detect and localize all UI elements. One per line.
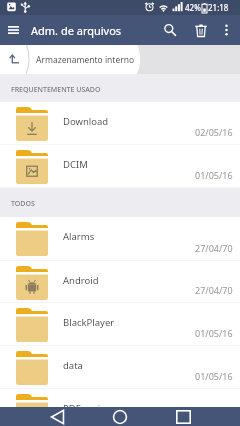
button[interactable]: data <box>0 346 240 389</box>
staticText: Android <box>63 274 99 287</box>
staticText: 01/05/16 <box>195 370 233 382</box>
button[interactable]: Home <box>90 407 150 426</box>
button[interactable]: Back <box>27 407 87 426</box>
button[interactable]: PDFengine <box>0 389 240 407</box>
button[interactable]: BlackPlayer <box>0 303 240 346</box>
staticText: Alarms <box>63 230 95 243</box>
staticText: 21:18 <box>208 2 229 13</box>
button[interactable]: DCIM <box>0 145 240 188</box>
button[interactable]: Go up one level <box>0 45 28 74</box>
staticText: 01/05/16 <box>195 169 233 181</box>
staticText: 27/04/70 <box>195 242 233 254</box>
button[interactable]: Delete <box>187 15 215 45</box>
staticText: 02/05/16 <box>195 126 233 138</box>
button[interactable]: More options <box>215 15 237 45</box>
staticText: BlackPlayer <box>63 316 115 329</box>
staticText: PDFengine <box>63 402 112 407</box>
staticText: Adm. de arquivos <box>31 23 122 38</box>
button[interactable]: Android <box>0 261 240 303</box>
button[interactable]: Open navigation menu <box>0 15 26 45</box>
staticText: Armazenamento interno <box>36 54 135 66</box>
button[interactable]: Recent apps <box>153 407 214 426</box>
staticText: data <box>63 359 83 372</box>
staticText: FREQUENTEMENTE USADO <box>11 85 101 95</box>
button[interactable]: Alarms <box>0 217 240 261</box>
staticText: DCIM <box>63 158 88 171</box>
staticText: 27/04/70 <box>195 284 233 296</box>
staticText: TODOS <box>11 199 35 209</box>
staticText: 01/05/16 <box>195 327 233 339</box>
button[interactable]: Download <box>0 102 240 145</box>
button[interactable]: Armazenamento interno <box>36 54 135 66</box>
staticText: Download <box>63 115 109 128</box>
button[interactable]: Search <box>156 15 184 45</box>
staticText: 42% <box>185 2 201 13</box>
